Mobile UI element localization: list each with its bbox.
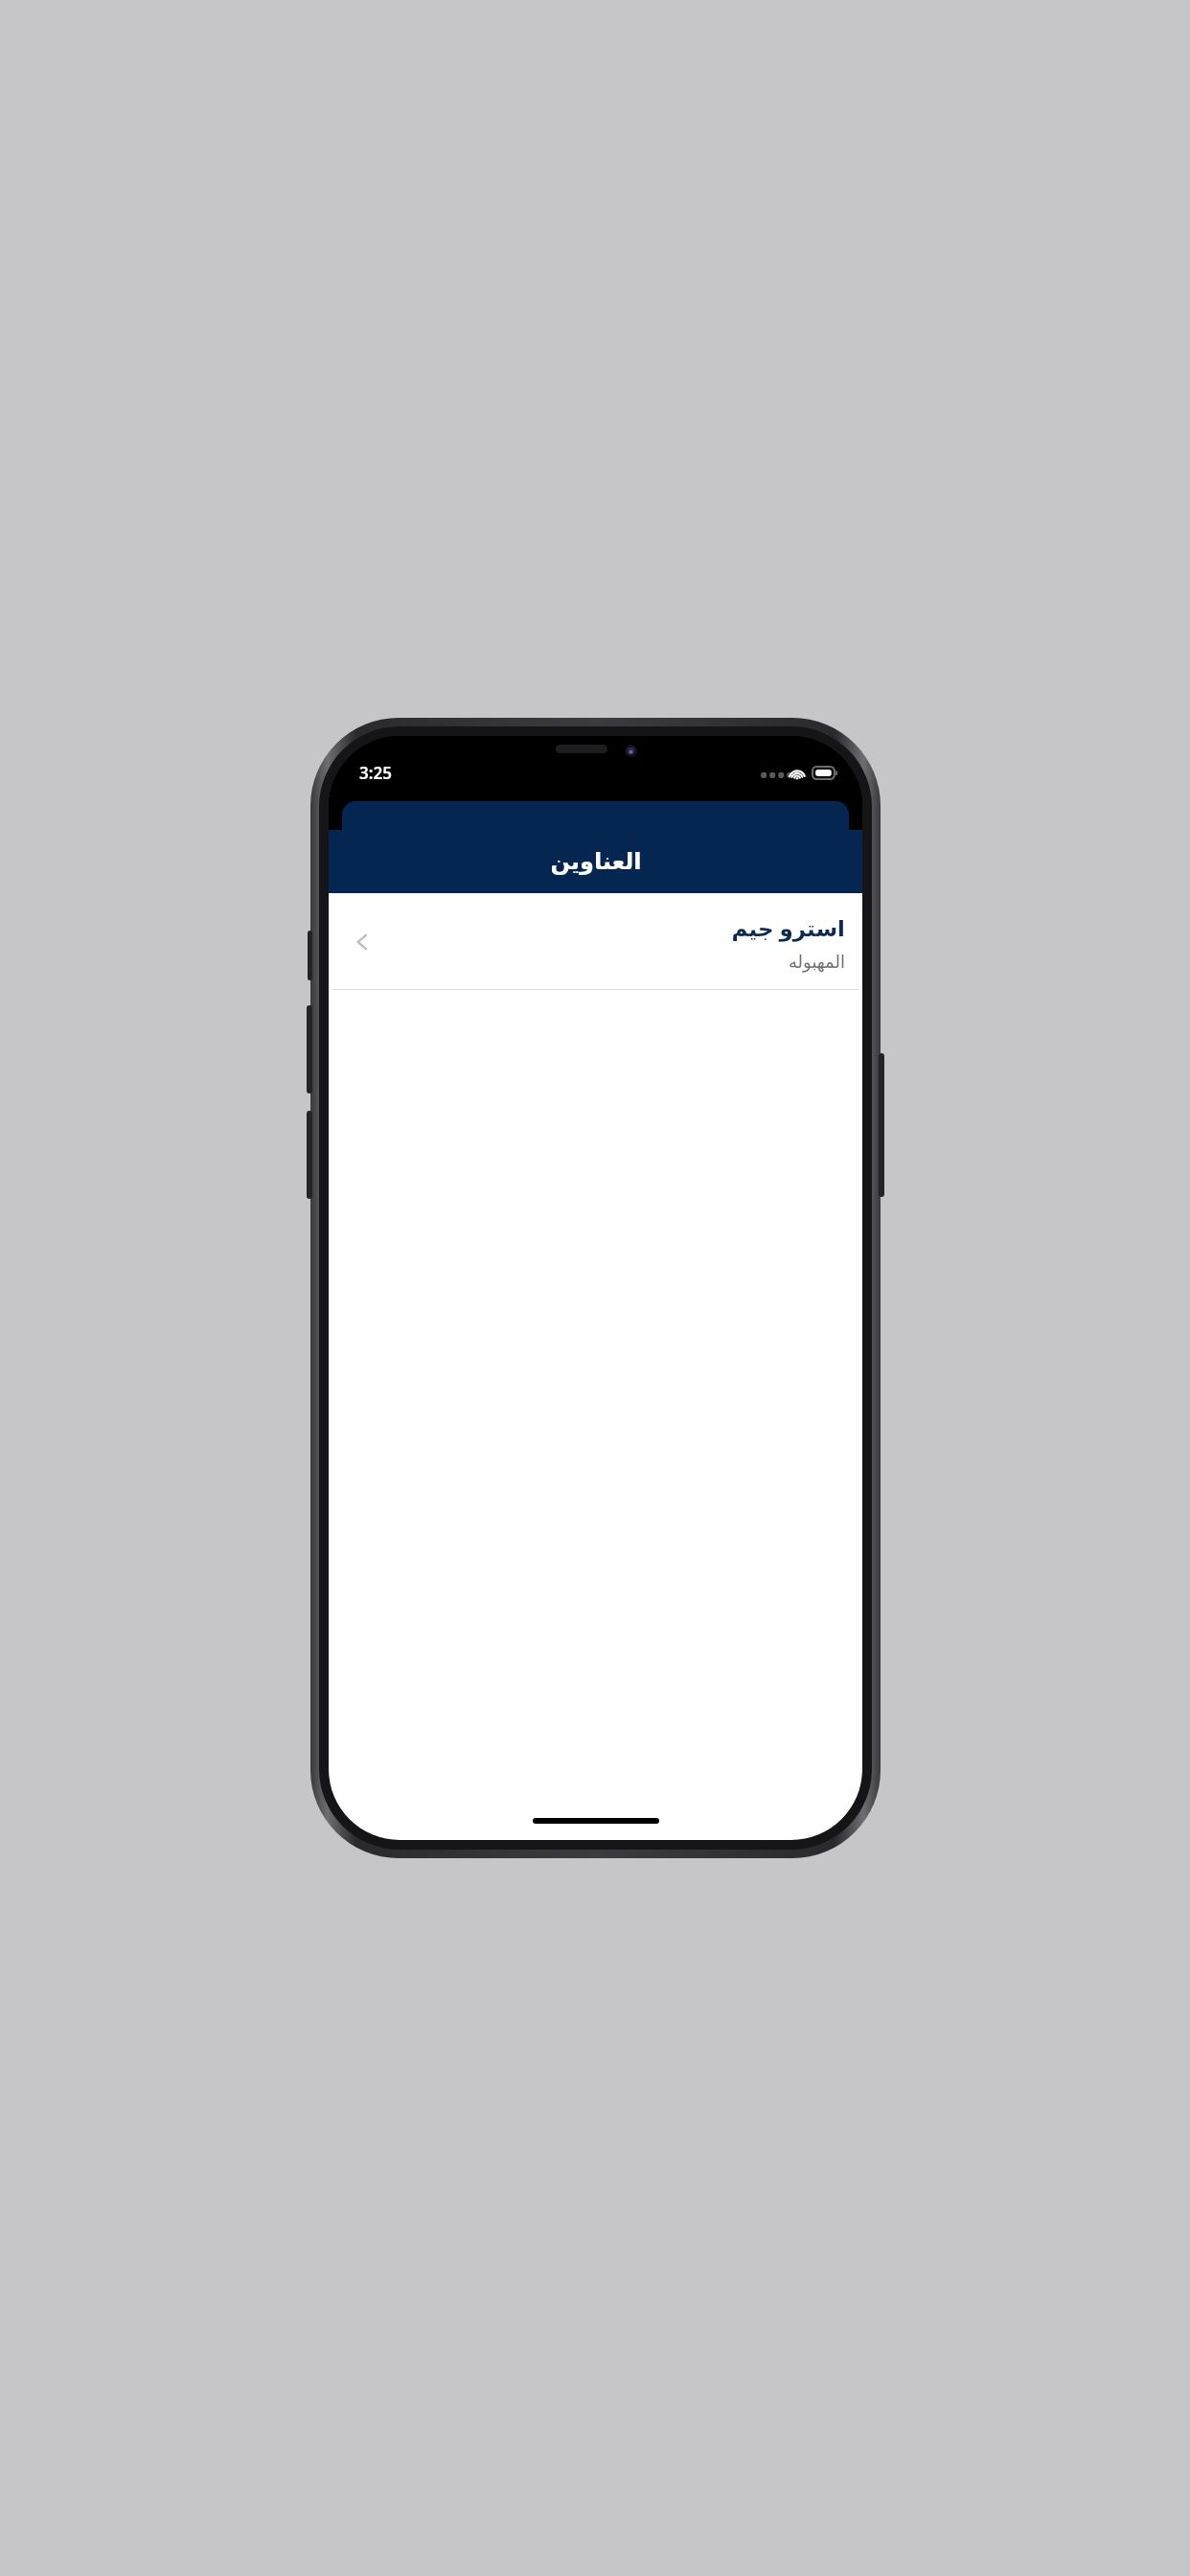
staticText: العناوين [550,848,642,875]
staticText: 3:25 [359,762,392,784]
button[interactable]: Open address details [329,893,862,990]
other: Open address details [342,922,382,962]
staticText: المهبوله [788,952,845,972]
staticText: استرو جيم [731,912,845,942]
